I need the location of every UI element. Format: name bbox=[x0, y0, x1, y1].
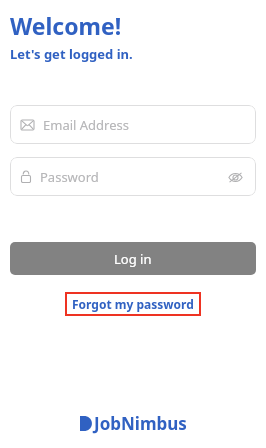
staticText: Forgot my password bbox=[72, 296, 194, 312]
button[interactable]: Forgot my password bbox=[65, 292, 201, 316]
staticText: JobNimbus bbox=[94, 412, 187, 435]
staticText: Email Address bbox=[43, 116, 245, 134]
staticText: Password bbox=[40, 168, 225, 186]
staticText: Log in bbox=[114, 250, 152, 268]
staticText: Let's get logged in. bbox=[10, 45, 133, 63]
button[interactable]: Log in bbox=[10, 242, 256, 275]
button[interactable]: Password bbox=[10, 157, 256, 196]
staticText: Welcome! bbox=[10, 10, 122, 41]
button[interactable]: Show password bbox=[225, 167, 245, 187]
button[interactable]: Email Address bbox=[10, 105, 256, 144]
